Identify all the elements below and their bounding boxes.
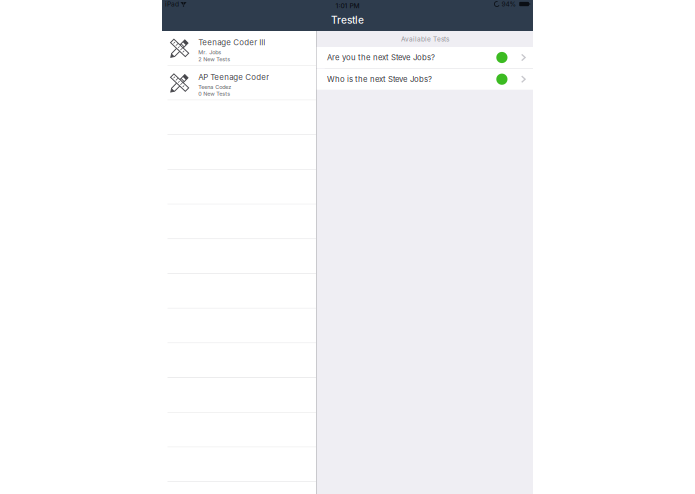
staticText: Available Tests bbox=[401, 35, 449, 43]
staticText: AP Teenage Coder bbox=[198, 72, 269, 82]
staticText: 94% bbox=[502, 0, 517, 8]
staticText: iPad bbox=[165, 0, 179, 8]
staticText: Mr. Jobs bbox=[198, 49, 221, 56]
staticText: Teenage Coder III bbox=[198, 38, 265, 47]
staticText: Are you the next Steve Jobs? bbox=[327, 53, 435, 62]
button[interactable]: Teenage Coder III bbox=[162, 31, 316, 66]
staticText: 2 New Tests bbox=[198, 56, 230, 62]
staticText: Trestle bbox=[331, 14, 364, 26]
button[interactable]: Are you the next Steve Jobs? bbox=[317, 47, 533, 68]
staticText: Teena Codez bbox=[198, 84, 231, 90]
staticText: 1:01 PM bbox=[335, 2, 359, 10]
button[interactable]: Who is the next Steve Jobs? bbox=[317, 69, 533, 90]
staticText: 0 New Tests bbox=[198, 90, 230, 97]
button[interactable]: AP Teenage Coder bbox=[162, 66, 316, 100]
staticText: Who is the next Steve Jobs? bbox=[327, 74, 432, 84]
